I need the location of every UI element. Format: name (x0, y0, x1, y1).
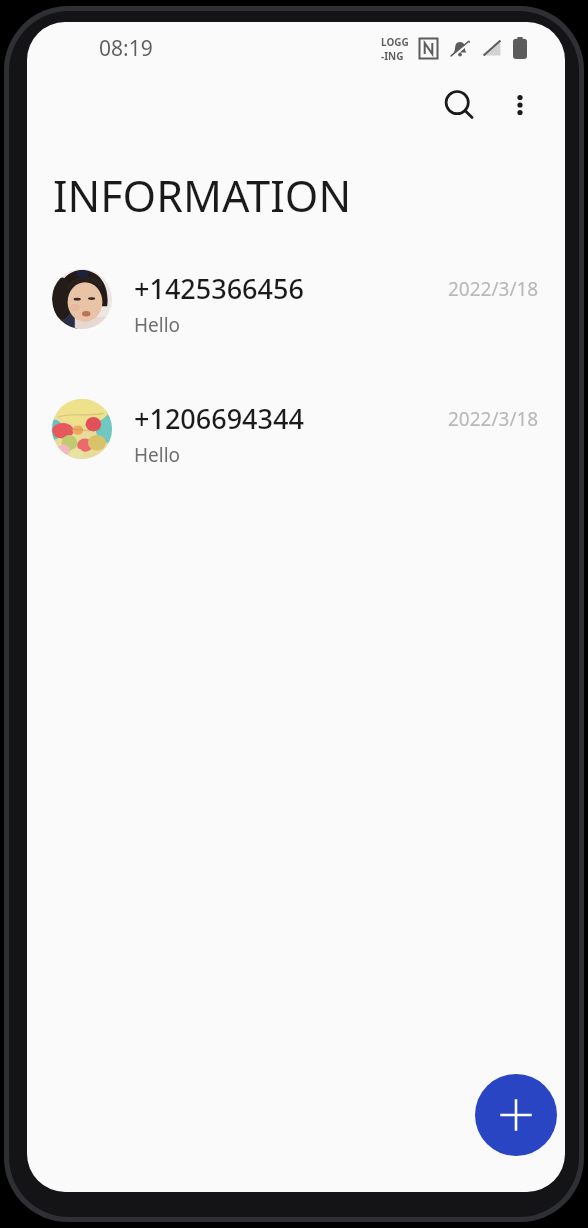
staticText: 08:19 (99, 34, 153, 63)
button[interactable]: +1206694344 (27, 399, 565, 468)
button[interactable]: Search (435, 81, 483, 129)
button[interactable]: +1425366456 (27, 269, 565, 338)
staticText: 2022/3/18 (448, 276, 539, 302)
staticText: INFORMATION (53, 166, 352, 225)
staticText: 2022/3/18 (448, 406, 539, 432)
staticText: +1425366456 (134, 270, 304, 307)
staticText: Hello (134, 442, 181, 468)
staticText: LOGG (381, 35, 409, 49)
button[interactable]: New message (475, 1074, 557, 1156)
staticText: Hello (134, 312, 181, 338)
staticText: +1206694344 (134, 400, 304, 437)
button[interactable]: More options (499, 84, 541, 126)
staticText: -ING (381, 49, 404, 61)
